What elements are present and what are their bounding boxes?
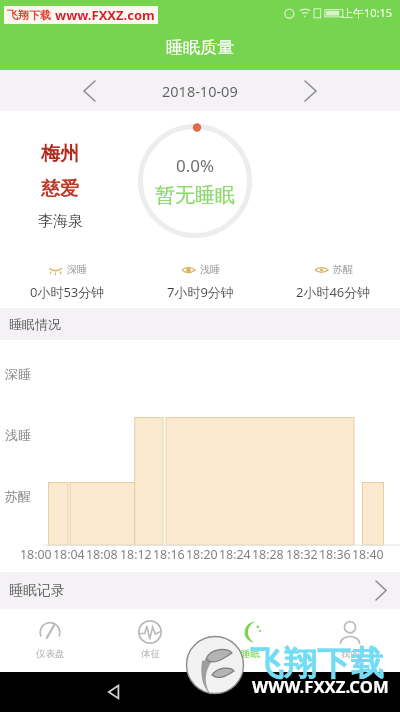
staticText: 18:00 — [20, 546, 52, 563]
button[interactable]: Back — [104, 682, 124, 702]
staticText: 0小时53分钟 — [30, 283, 105, 301]
staticText: 7小时9分钟 — [167, 283, 234, 301]
staticText: 飞翔下载 — [7, 8, 51, 22]
staticText: 睡眠情况 — [9, 316, 61, 332]
staticText: 18:32 — [286, 546, 318, 563]
button[interactable]: Next day — [295, 76, 325, 106]
staticText: 浅睡 — [5, 427, 31, 443]
staticText: 梅州 — [41, 142, 79, 166]
staticText: 仪表盘 — [36, 648, 65, 660]
staticText: 慈爱 — [41, 177, 79, 201]
button[interactable]: 体征 — [100, 609, 200, 660]
button[interactable]: Previous day — [74, 76, 104, 106]
staticText: 18:36 — [319, 546, 351, 563]
staticText: 李海泉 — [38, 212, 83, 231]
button[interactable]: 苏醒 — [267, 263, 400, 301]
staticText: 18:28 — [252, 546, 284, 563]
staticText: 18:40 — [352, 546, 384, 563]
staticText: 2小时46分钟 — [296, 283, 371, 301]
staticText: 0.0% — [176, 154, 215, 177]
staticText: 我的 — [341, 648, 360, 660]
staticText: 18:08 — [86, 546, 118, 563]
staticText: 睡眠 — [241, 648, 260, 660]
staticText: 飞翔下载 — [250, 643, 384, 685]
staticText: www.FXXZ.com — [55, 6, 155, 24]
staticText: 苏醒 — [5, 488, 31, 504]
staticText: 深睡 — [67, 263, 87, 276]
button[interactable]: 睡眠 — [200, 609, 300, 660]
staticText: 18:20 — [186, 546, 218, 563]
staticText: 18:12 — [120, 546, 152, 563]
staticText: WWW.FXXZ.COM — [252, 675, 389, 698]
button[interactable]: 睡眠记录 — [0, 572, 400, 609]
staticText: 苏醒 — [333, 263, 353, 276]
button[interactable]: 深睡 — [0, 263, 134, 301]
staticText: 2018-10-09 — [162, 81, 238, 101]
button[interactable]: 我的 — [300, 609, 400, 660]
staticText: 18:16 — [153, 546, 185, 563]
staticText: 暂无睡眠 — [155, 183, 235, 208]
staticText: 浅睡 — [200, 263, 220, 276]
staticText: 上午10:15 — [342, 5, 393, 20]
staticText: 睡眠记录 — [9, 582, 65, 600]
button[interactable]: 仪表盘 — [0, 609, 100, 660]
staticText: 18:24 — [219, 546, 251, 563]
staticText: 睡眠质量 — [166, 37, 234, 58]
staticText: 18:04 — [53, 546, 85, 563]
staticText: 体征 — [141, 648, 160, 660]
button[interactable]: 浅睡 — [134, 263, 267, 301]
staticText: 深睡 — [5, 366, 31, 382]
